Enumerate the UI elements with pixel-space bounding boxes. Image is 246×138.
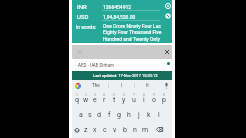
staticText: 1,94,84,520.00: [103, 14, 136, 20]
staticText: 4: [103, 93, 105, 97]
button[interactable]: 7: [129, 91, 139, 106]
button[interactable]: 2: [81, 91, 90, 106]
button[interactable]: l: [154, 106, 164, 121]
staticText: h: [127, 111, 131, 119]
staticText: 1: [76, 93, 78, 97]
button[interactable]: a: [76, 106, 85, 121]
button[interactable]: g: [114, 106, 124, 121]
staticText: v: [113, 126, 117, 134]
button[interactable]: d: [94, 106, 104, 121]
staticText: s: [88, 111, 92, 119]
button[interactable]: 1: [72, 91, 81, 106]
button[interactable]: 9: [149, 91, 159, 106]
button[interactable]: Backspace: [150, 121, 169, 136]
staticText: l: [158, 111, 160, 119]
staticText: b: [123, 126, 127, 134]
button[interactable]: I: [109, 80, 134, 91]
button[interactable]: 0: [159, 91, 169, 106]
staticText: 1266454912: [103, 4, 132, 10]
staticText: AED - UAE Dirham: [78, 63, 114, 68]
button[interactable]: 4: [99, 91, 109, 106]
staticText: a: [79, 111, 83, 119]
staticText: d: [97, 111, 101, 119]
button[interactable]: s: [85, 106, 94, 121]
staticText: AE: [77, 49, 84, 55]
staticText: c: [103, 126, 107, 134]
staticText: r: [103, 96, 106, 104]
staticText: g: [117, 111, 121, 119]
staticText: q: [75, 96, 79, 104]
button[interactable]: Voice input: [160, 80, 172, 91]
button[interactable]: m: [140, 121, 150, 136]
button[interactable]: Swap currencies: [164, 12, 172, 20]
button[interactable]: Clear amount: [164, 2, 172, 10]
staticText: Last updated: 17-Nov-2017 15:32:13: [93, 73, 158, 78]
staticText: x: [93, 126, 97, 134]
button[interactable]: h: [124, 106, 134, 121]
staticText: It: [146, 83, 149, 88]
staticText: 3: [94, 93, 96, 97]
staticText: n: [133, 126, 137, 134]
button[interactable]: Shift: [72, 121, 81, 136]
staticText: i: [143, 96, 145, 104]
button[interactable]: j: [134, 106, 144, 121]
staticText: z: [84, 126, 88, 134]
staticText: j: [138, 111, 140, 119]
button[interactable]: c: [100, 121, 110, 136]
staticText: 9: [153, 93, 155, 97]
button[interactable]: x: [90, 121, 100, 136]
button[interactable]: AED - UAE Dirham: [72, 59, 172, 71]
button[interactable]: 3: [90, 91, 99, 106]
button[interactable]: Clear search: [163, 48, 170, 55]
staticText: I: [121, 83, 123, 88]
button[interactable]: Google search: [72, 80, 83, 91]
button[interactable]: n: [130, 121, 140, 136]
staticText: w: [83, 96, 89, 104]
staticText: In words:: [76, 24, 97, 30]
staticText: INR: [77, 3, 87, 10]
button[interactable]: b: [120, 121, 130, 136]
staticText: t: [113, 96, 116, 104]
button[interactable]: 8: [139, 91, 149, 106]
staticText: 6: [123, 93, 125, 97]
button[interactable]: 5: [109, 91, 119, 106]
staticText: k: [147, 111, 151, 119]
staticText: o: [152, 96, 156, 104]
staticText: 8: [143, 93, 145, 97]
staticText: e: [93, 96, 97, 104]
button[interactable]: 6: [119, 91, 129, 106]
staticText: USD: [77, 13, 89, 20]
staticText: y: [122, 96, 126, 104]
staticText: One Crore Ninety Four Lac Eighty Four Th…: [103, 23, 164, 43]
button[interactable]: k: [144, 106, 154, 121]
button[interactable]: v: [110, 121, 120, 136]
staticText: 0: [163, 93, 165, 97]
button[interactable]: f: [104, 106, 114, 121]
button[interactable]: It: [135, 80, 160, 91]
staticText: 7: [133, 93, 135, 97]
staticText: u: [132, 96, 136, 104]
staticText: The: [92, 83, 100, 88]
staticText: p: [162, 96, 166, 104]
staticText: f: [108, 111, 111, 119]
button[interactable]: The: [83, 80, 108, 91]
staticText: 5: [113, 93, 115, 97]
staticText: 2: [85, 93, 87, 97]
button[interactable]: z: [81, 121, 90, 136]
staticText: m: [142, 126, 149, 134]
